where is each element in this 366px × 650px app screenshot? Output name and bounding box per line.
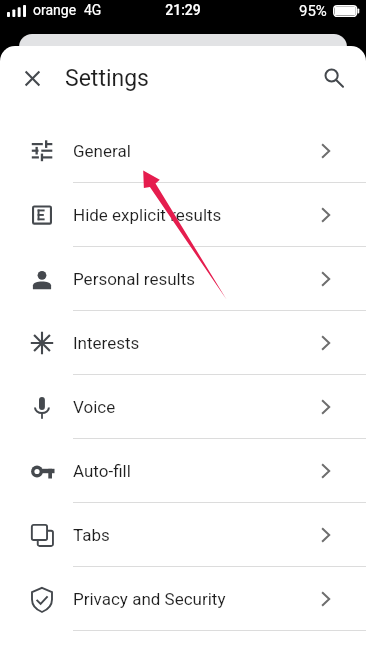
staticText: Settings (65, 65, 149, 92)
button[interactable]: Close (13, 59, 51, 97)
staticText: 21:29 (0, 2, 366, 18)
staticText: orange (33, 2, 77, 18)
button[interactable]: Search (314, 59, 353, 98)
staticText: Tabs (73, 525, 110, 545)
button[interactable]: Tabs (0, 503, 366, 567)
staticText: Personal results (73, 269, 196, 289)
button[interactable]: Privacy and Security (0, 567, 366, 631)
button[interactable]: General (0, 119, 366, 183)
staticText: Interests (73, 333, 140, 353)
staticText: Privacy and Security (73, 589, 226, 609)
button[interactable]: Auto-fill (0, 439, 366, 503)
button[interactable]: Hide explicit results (0, 183, 366, 247)
staticText: Voice (73, 397, 116, 417)
staticText: Hide explicit results (73, 205, 222, 225)
button[interactable]: Interests (0, 311, 366, 375)
button[interactable]: Personal results (0, 247, 366, 311)
staticText: 95% (299, 2, 327, 20)
staticText: General (73, 141, 131, 161)
staticText: 4G (84, 2, 102, 18)
button[interactable]: Voice (0, 375, 366, 439)
staticText: Auto-fill (73, 461, 131, 481)
